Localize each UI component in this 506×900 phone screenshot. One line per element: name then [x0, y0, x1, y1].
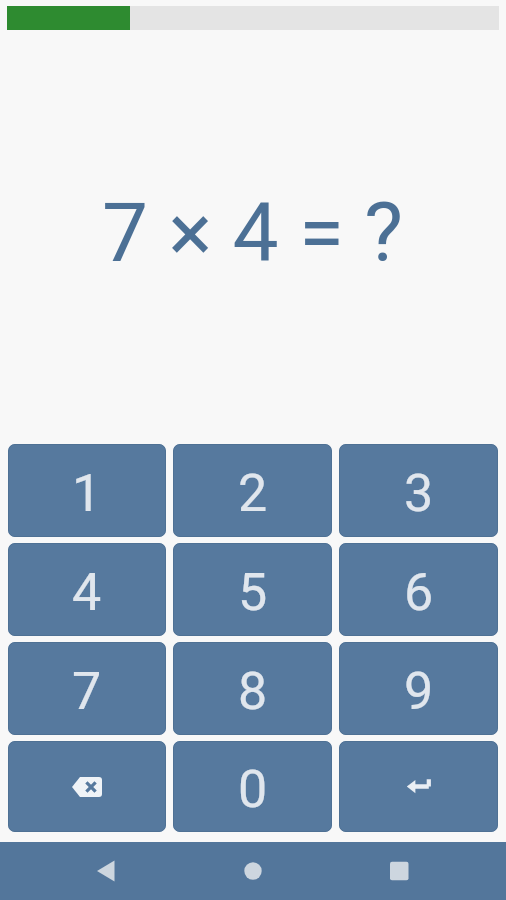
staticText: 8 — [238, 661, 268, 722]
staticText: 7 — [72, 661, 102, 722]
button[interactable] — [8, 741, 166, 832]
button[interactable]: 0 — [173, 741, 332, 832]
staticText: 7 × 4 = ? — [102, 185, 404, 281]
staticText: 1 — [72, 463, 102, 524]
button[interactable]: 1 — [8, 444, 166, 537]
staticText: 2 — [238, 463, 268, 524]
button[interactable]: 6 — [339, 543, 498, 636]
button[interactable] — [339, 741, 498, 832]
staticText: 3 — [404, 463, 434, 524]
button[interactable] — [337, 842, 506, 900]
button[interactable]: 2 — [173, 444, 332, 537]
button[interactable] — [168, 842, 337, 900]
staticText: 5 — [238, 562, 268, 623]
button[interactable]: 5 — [173, 543, 332, 636]
button[interactable]: 7 — [8, 642, 166, 735]
button[interactable]: 9 — [339, 642, 498, 735]
button[interactable]: 8 — [173, 642, 332, 735]
staticText: 4 — [72, 562, 102, 623]
button[interactable]: 3 — [339, 444, 498, 537]
staticText: 6 — [404, 562, 434, 623]
staticText: 0 — [238, 759, 268, 820]
staticText: 9 — [404, 661, 434, 722]
button[interactable] — [0, 842, 168, 900]
button[interactable]: 4 — [8, 543, 166, 636]
